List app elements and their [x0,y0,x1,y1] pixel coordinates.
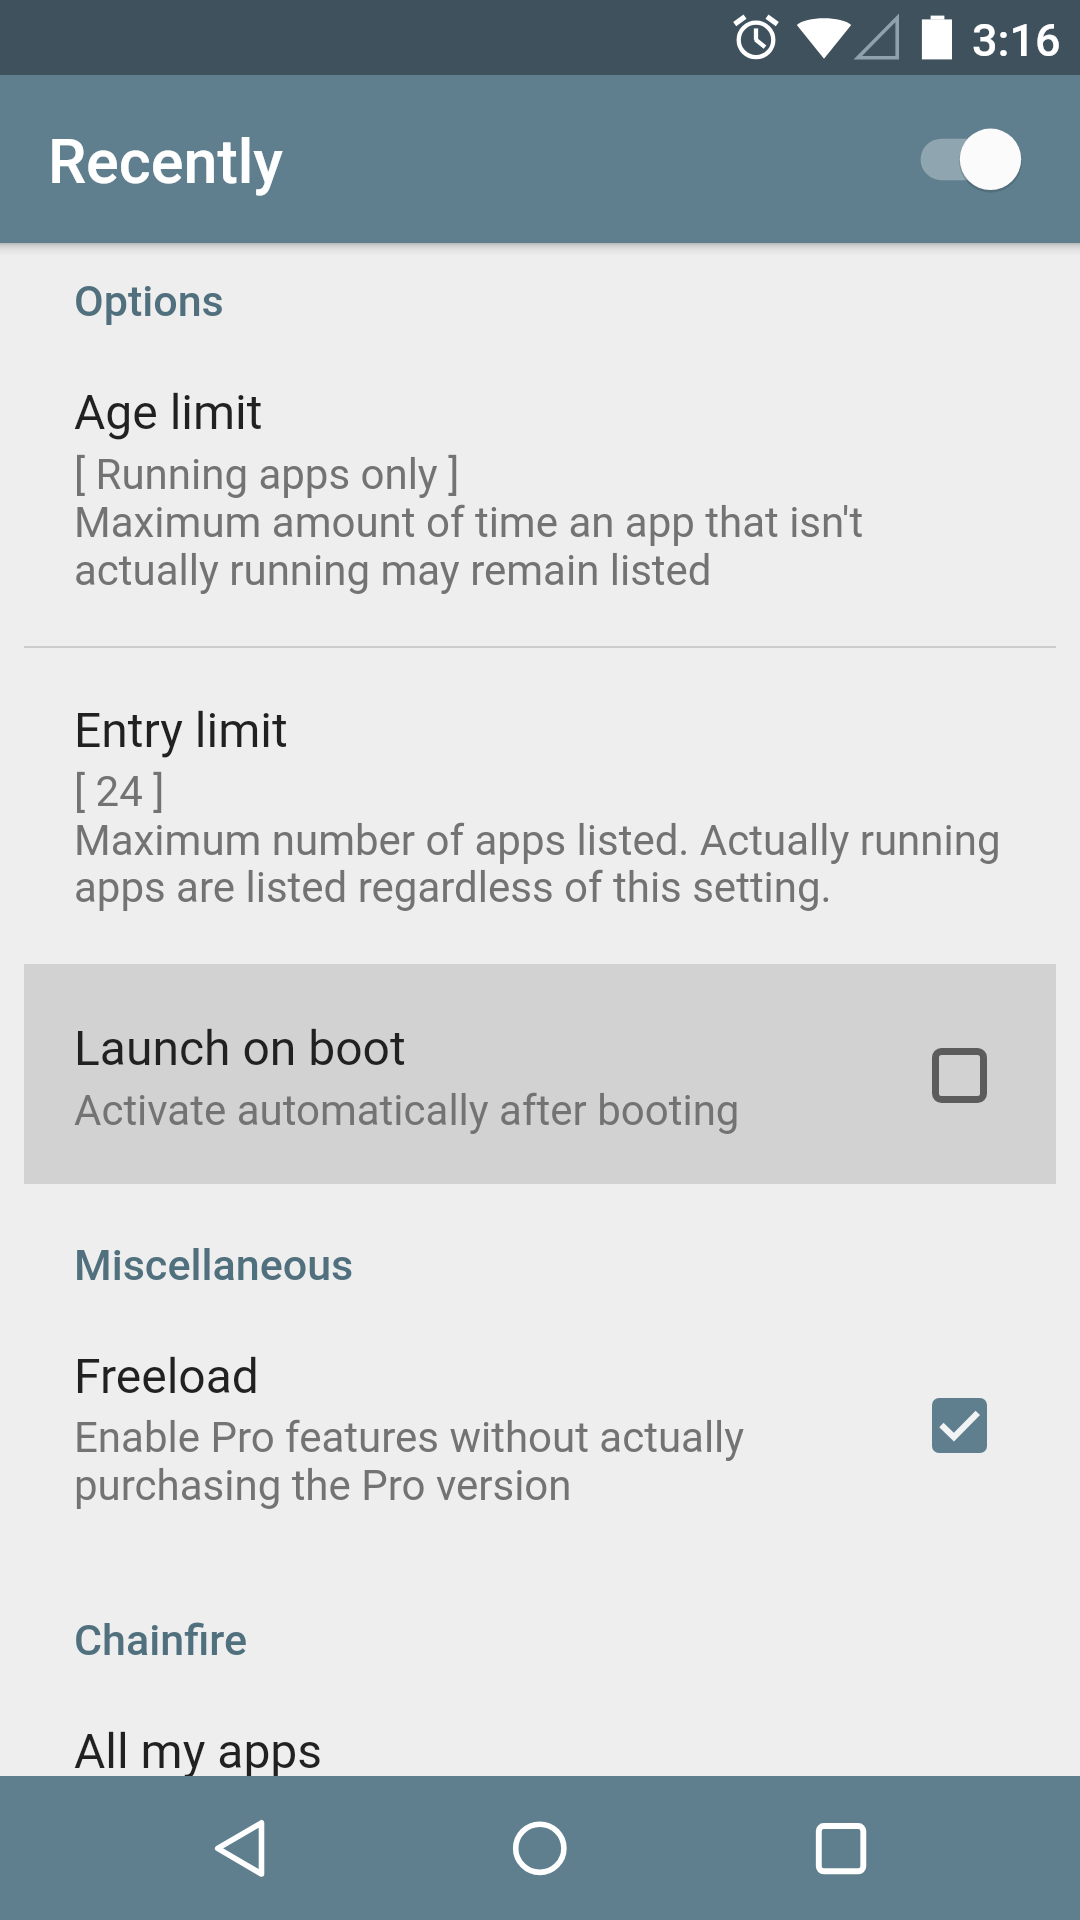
staticText: Maximum amount of time an app that isn't [74,498,864,547]
staticText: apps are listed regardless of this setti… [74,863,832,912]
staticText: Age limit [74,384,263,440]
button[interactable] [0,1694,1080,1776]
button[interactable] [0,672,1080,964]
button[interactable]: Back [180,1798,280,1898]
staticText: [ 24 ] [74,767,165,816]
staticText: Activate automatically after booting [74,1086,740,1135]
staticText: Miscellaneous [74,1240,354,1290]
button[interactable]: Enable service [906,114,1036,204]
staticText: Maximum number of apps listed. Actually … [74,816,1001,865]
staticText: Launch on boot [74,1020,406,1076]
staticText: Chainfire [74,1615,247,1665]
staticText: Enable Pro features without actually [74,1413,745,1462]
staticText: 3:16 [972,14,1061,67]
staticText: [ Running apps only ] [74,450,460,499]
staticText: actually running may remain listed [74,546,712,595]
button[interactable]: Recent apps [790,1798,890,1898]
staticText: Freeload [74,1348,259,1404]
button[interactable] [24,964,1056,1184]
button[interactable]: Home [490,1798,590,1898]
staticText: purchasing the Pro version [74,1461,572,1510]
button[interactable] [0,1318,1080,1554]
button[interactable] [0,354,1080,646]
staticText: Recently [48,126,284,197]
staticText: Options [74,276,224,326]
staticText: All my apps [74,1723,323,1779]
staticText: Entry limit [74,702,288,758]
